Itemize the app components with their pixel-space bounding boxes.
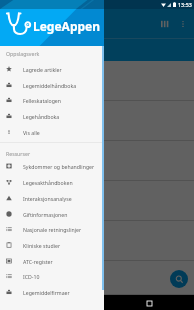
button[interactable]: Legemiddelfirmaer [0,284,104,300]
button[interactable]: View mode [156,15,174,33]
staticText: LegeAppen [33,18,101,34]
staticText: Lagrede artikler [23,66,62,73]
button[interactable]: Sykdommer og behandlinger [0,158,104,174]
staticText: 13:53 [178,1,192,8]
staticText: Interaksjonsanalyse [23,195,72,202]
button[interactable]: Giftinformasjonen [0,206,104,222]
button[interactable]: ICD-10 [0,268,104,284]
staticText: ICD-10 [23,273,40,280]
button[interactable]: Vis alle [0,124,104,140]
button[interactable]: Kliniske studier [0,237,104,253]
staticText: Felleskatalogen [23,97,61,104]
button[interactable]: Legehåndboka [0,108,104,124]
staticText: Ressurser [6,150,31,157]
staticText: Oppslagsverk [6,50,40,57]
staticText: Giftinformasjonen [23,211,68,218]
staticText: ATC-register [23,258,53,265]
staticText: Nasjonale retningslinjer [23,226,82,233]
button[interactable]: Legevakthåndboken [0,174,104,190]
staticText: Legemiddelhåndboka [23,82,77,89]
staticText: Sykdommer og behandlinger [23,163,95,170]
staticText: Legehåndboka [23,113,60,120]
button[interactable]: Felleskatalogen [0,92,104,108]
button[interactable]: Search [170,270,188,288]
staticText: Kliniske studier [23,242,61,249]
staticText: Legemiddelfirmaer [23,289,70,296]
button[interactable]: More options [174,15,192,33]
button[interactable]: ATC-register [0,253,104,269]
staticText: Legevakthåndboken [23,179,73,186]
button[interactable]: Lagrede artikler [0,61,104,77]
button[interactable]: Legemiddelhåndboka [0,77,104,93]
button[interactable]: Interaksjonsanalyse [0,190,104,206]
button[interactable]: Recents [142,296,156,310]
button[interactable]: Nasjonale retningslinjer [0,221,104,237]
staticText: Vis alle [23,129,40,136]
